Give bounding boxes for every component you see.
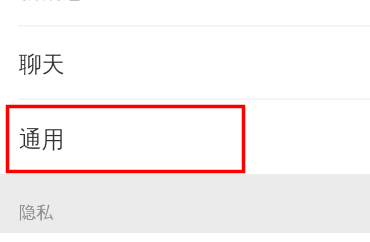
button[interactable]: 隐私 xyxy=(0,174,370,233)
staticText: 通用 xyxy=(19,125,65,154)
staticText: 聊天 xyxy=(19,50,65,79)
button[interactable]: 通用 xyxy=(0,100,370,174)
button[interactable]: 聊天 xyxy=(0,27,370,98)
staticText: 新消息通知 xyxy=(19,0,129,2)
staticText: 隐私 xyxy=(19,202,53,223)
